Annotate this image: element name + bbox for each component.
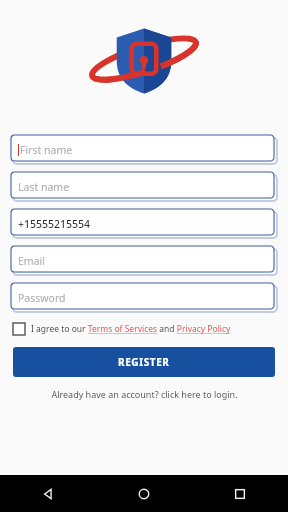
staticText: Password [18,291,66,305]
button[interactable]: Email [11,246,277,275]
staticText: Email [18,254,45,268]
staticText: Already have an account? click here to l… [51,388,238,400]
button[interactable]: REGISTER [13,347,275,377]
staticText: First name [20,143,73,157]
button[interactable]: Back [0,475,96,512]
button[interactable]: Recent apps [192,475,288,512]
staticText: I agree to our Terms of Services and Pri… [31,323,231,335]
button[interactable]: Home [96,475,192,512]
button[interactable]: First name [11,135,277,164]
button[interactable]: Password [11,283,277,312]
button[interactable]: I agree to our Terms of Services and Pri… [13,323,275,335]
button[interactable]: Last name [11,172,277,201]
button[interactable]: Already have an account? click here to l… [0,388,288,400]
staticText: REGISTER [118,355,170,369]
button[interactable]: +15555215554 [11,209,277,238]
staticText: +15555215554 [18,217,91,231]
staticText: Last name [18,180,70,194]
